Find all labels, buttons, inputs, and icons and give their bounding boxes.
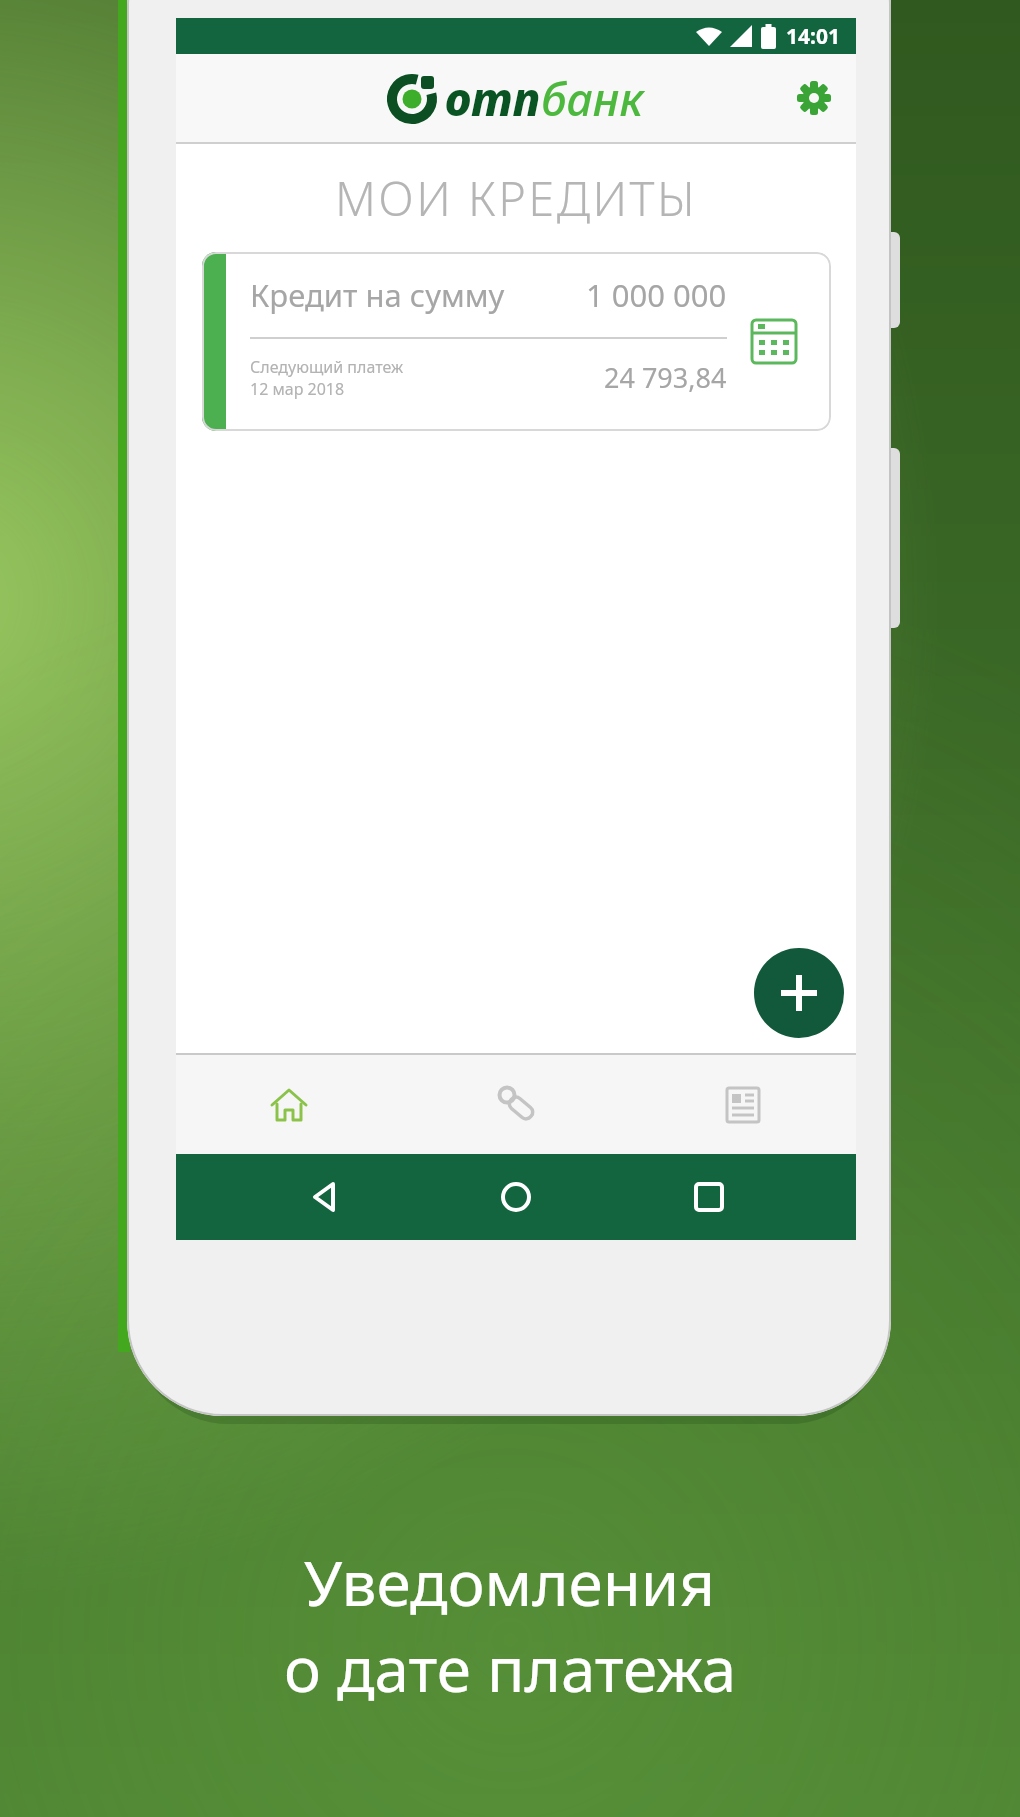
button[interactable]: Кредит на сумму	[202, 252, 831, 431]
button[interactable]	[794, 78, 834, 118]
staticText: банк	[541, 67, 644, 130]
button[interactable]	[754, 948, 844, 1038]
staticText: отп	[445, 67, 541, 130]
staticText: о дате платежа	[284, 1626, 737, 1710]
staticText: Кредит на сумму	[250, 274, 505, 316]
staticText: Следующий платеж	[250, 356, 404, 378]
staticText: Уведомления	[304, 1540, 716, 1624]
staticText: 24 793,84	[604, 359, 727, 396]
button[interactable]	[300, 1154, 348, 1240]
button[interactable]	[492, 1154, 540, 1240]
staticText: 1 000 000	[586, 274, 727, 316]
button[interactable]	[176, 1055, 402, 1154]
button[interactable]	[629, 1055, 856, 1154]
staticText: 14:01	[786, 22, 840, 51]
button[interactable]	[402, 1055, 629, 1154]
staticText: 12 мар 2018	[250, 378, 345, 400]
staticText: МОИ КРЕДИТЫ	[176, 166, 856, 230]
button[interactable]	[685, 1154, 733, 1240]
